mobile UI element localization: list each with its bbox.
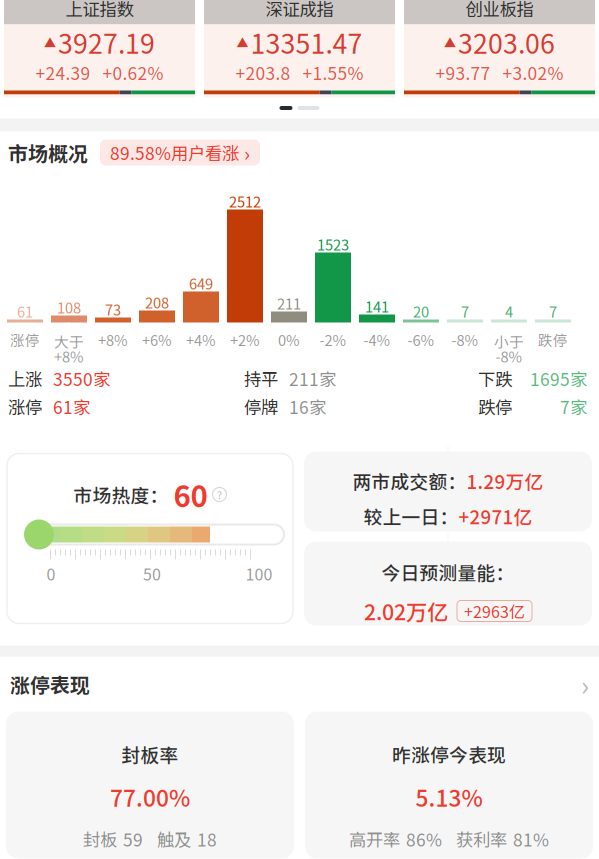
- staticText: 108: [57, 296, 81, 318]
- staticText: -8%: [495, 345, 522, 367]
- staticText: ▲: [444, 33, 456, 51]
- staticText: 0%: [278, 329, 300, 350]
- staticText: ?: [217, 487, 222, 502]
- staticText: 7: [549, 300, 557, 322]
- staticText: +203.8: [235, 60, 290, 85]
- staticText: 跌停: [538, 329, 568, 350]
- staticText: 141: [365, 295, 389, 317]
- staticText: 创业板指: [465, 0, 533, 21]
- staticText: ›: [581, 665, 589, 703]
- staticText: +4%: [186, 329, 216, 350]
- staticText: 高开率: [349, 826, 400, 851]
- staticText: -4%: [363, 329, 390, 350]
- staticText: 61家: [53, 394, 90, 419]
- staticText: 触及: [157, 826, 191, 851]
- staticText: 市场热度：: [73, 481, 168, 508]
- staticText: ▲: [236, 33, 248, 51]
- staticText: 20: [413, 300, 429, 322]
- staticText: 下跌: [478, 366, 512, 391]
- staticText: 7家: [560, 394, 587, 419]
- staticText: 4: [505, 300, 513, 322]
- staticText: 市场概况: [8, 138, 88, 167]
- staticText: -6%: [407, 329, 434, 350]
- staticText: 两市成交额：: [352, 467, 466, 494]
- staticText: -8%: [451, 329, 478, 350]
- staticText: 77.00%: [110, 781, 190, 813]
- staticText: +24.39: [35, 60, 90, 85]
- staticText: 5.13%: [415, 781, 482, 813]
- staticText: 86%: [406, 826, 442, 851]
- staticText: 停牌: [244, 394, 278, 419]
- staticText: 211家: [289, 366, 336, 391]
- staticText: 16家: [289, 394, 326, 419]
- staticText: 3550家: [53, 366, 110, 391]
- staticText: 大于: [54, 330, 84, 352]
- staticText: +3.02%: [502, 60, 563, 85]
- button[interactable]: 深证成指: [204, 0, 395, 97]
- staticText: 100: [245, 562, 272, 585]
- staticText: ›: [244, 138, 250, 167]
- staticText: 7: [461, 300, 469, 322]
- button[interactable]: 89.58%用户看涨: [100, 139, 260, 165]
- staticText: +2%: [230, 329, 260, 350]
- staticText: 2512: [229, 190, 261, 212]
- staticText: 211: [277, 292, 301, 314]
- staticText: 较上一日：: [363, 502, 458, 529]
- staticText: 1523: [317, 233, 349, 255]
- button[interactable]: 上证指数: [4, 0, 195, 97]
- staticText: 3927.19: [58, 23, 155, 61]
- staticText: 61: [17, 300, 33, 322]
- staticText: 2.02万亿: [364, 596, 448, 626]
- staticText: 上涨: [8, 366, 42, 391]
- staticText: 今日预测量能：: [381, 558, 514, 585]
- staticText: 小于: [494, 330, 524, 352]
- staticText: 73: [105, 298, 121, 320]
- staticText: +93.77: [435, 60, 490, 85]
- staticText: +8%: [54, 345, 84, 367]
- staticText: -2%: [319, 329, 346, 350]
- staticText: 封板: [83, 826, 117, 851]
- staticText: 昨涨停今表现: [392, 740, 506, 767]
- staticText: 深证成指: [265, 0, 333, 21]
- staticText: 649: [189, 272, 213, 294]
- staticText: 89.58%用户看涨: [110, 140, 239, 165]
- staticText: +0.62%: [102, 60, 163, 85]
- staticText: 1.29万亿: [466, 467, 543, 494]
- staticText: 81%: [513, 826, 549, 851]
- staticText: 60: [173, 473, 207, 516]
- staticText: +6%: [142, 329, 172, 350]
- button[interactable]: 创业板指: [404, 0, 595, 97]
- staticText: +2971亿: [458, 502, 532, 529]
- staticText: 上证指数: [65, 0, 133, 21]
- staticText: +1.55%: [302, 60, 363, 85]
- button[interactable]: 涨停表现: [0, 656, 599, 711]
- button[interactable]: 昨涨停今表现: [305, 711, 593, 858]
- staticText: 59: [123, 826, 143, 851]
- staticText: 18: [197, 826, 217, 851]
- staticText: +2963亿: [464, 599, 525, 623]
- staticText: 跌停: [478, 394, 512, 419]
- staticText: 50: [143, 562, 161, 585]
- staticText: 208: [145, 291, 169, 313]
- staticText: 0: [46, 562, 55, 585]
- staticText: 1695家: [530, 366, 587, 391]
- staticText: 3203.06: [458, 23, 555, 61]
- staticText: 持平: [244, 366, 278, 391]
- staticText: 封板率: [121, 740, 178, 767]
- staticText: 获利率: [456, 826, 507, 851]
- staticText: ▲: [44, 33, 56, 51]
- staticText: 涨停: [10, 329, 40, 350]
- staticText: +8%: [98, 329, 128, 350]
- staticText: 13351.47: [250, 23, 362, 61]
- button[interactable]: 封板率: [6, 711, 294, 858]
- staticText: 涨停: [8, 394, 42, 419]
- staticText: 涨停表现: [10, 669, 90, 698]
